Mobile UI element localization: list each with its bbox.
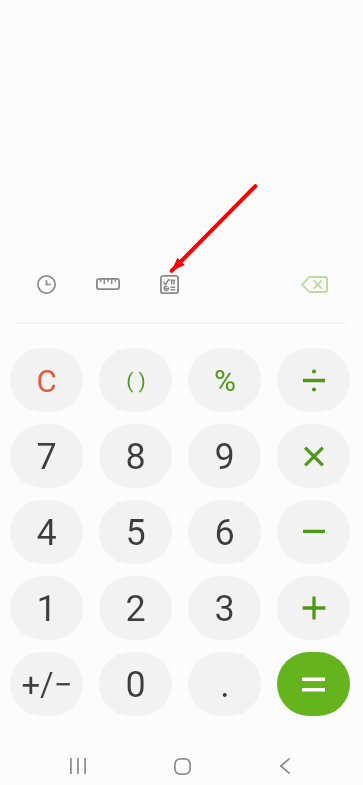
staticText: C	[36, 363, 57, 399]
staticText: 5	[125, 512, 146, 554]
button[interactable]: Home	[156, 740, 208, 785]
button[interactable]: .	[188, 652, 261, 716]
staticText: 7	[36, 436, 57, 478]
button[interactable]: C	[10, 348, 83, 412]
button[interactable]: 9	[188, 424, 261, 488]
button[interactable]: Back	[259, 740, 311, 785]
staticText: 9	[214, 436, 235, 478]
button[interactable]: Unit converter	[88, 264, 128, 304]
button[interactable]	[277, 652, 350, 716]
staticText: 6	[214, 512, 235, 554]
button[interactable]: 5	[99, 500, 172, 564]
staticText: +/−	[21, 665, 73, 704]
button[interactable]: 0	[99, 652, 172, 716]
button[interactable]: Scientific calculator	[149, 264, 189, 304]
staticText: 3	[214, 588, 235, 630]
button[interactable]: +/−	[10, 652, 83, 716]
staticText: %	[214, 363, 236, 398]
button[interactable]: %	[188, 348, 261, 412]
staticText: 8	[125, 436, 146, 478]
staticText: ( )	[126, 369, 146, 394]
button[interactable]: History	[26, 264, 66, 304]
button[interactable]: Backspace	[294, 264, 334, 304]
button[interactable]: 7	[10, 424, 83, 488]
button[interactable]: 3	[188, 576, 261, 640]
button[interactable]: ( )	[99, 348, 172, 412]
button[interactable]	[277, 500, 350, 564]
button[interactable]	[277, 576, 350, 640]
button[interactable]: 8	[99, 424, 172, 488]
staticText: 2	[125, 588, 146, 630]
button[interactable]: 1	[10, 576, 83, 640]
button[interactable]	[277, 348, 350, 412]
staticText: 4	[36, 512, 57, 554]
staticText: .	[220, 664, 230, 706]
button[interactable]: 2	[99, 576, 172, 640]
staticText: 1	[36, 588, 57, 630]
button[interactable]: 6	[188, 500, 261, 564]
staticText: 0	[125, 664, 146, 706]
button[interactable]: Recent apps	[52, 740, 104, 785]
button[interactable]	[277, 424, 350, 488]
button[interactable]: 4	[10, 500, 83, 564]
